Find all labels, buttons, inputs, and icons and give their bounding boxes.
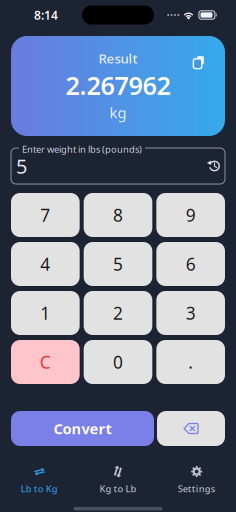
- button[interactable]: .: [156, 340, 225, 384]
- staticText: 8: [113, 203, 123, 226]
- staticText: 6: [186, 252, 196, 275]
- staticText: kg: [109, 103, 126, 122]
- button[interactable]: History: [208, 159, 221, 172]
- button[interactable]: 5: [84, 242, 152, 286]
- button[interactable]: 7: [11, 193, 80, 237]
- staticText: 0: [113, 350, 123, 373]
- staticText: 3: [186, 301, 196, 324]
- button[interactable]: Kg to Lb: [79, 461, 157, 499]
- staticText: C: [40, 350, 51, 373]
- staticText: 5: [16, 153, 27, 179]
- button[interactable]: C: [11, 340, 80, 384]
- staticText: 7: [40, 203, 50, 226]
- staticText: 9: [186, 203, 196, 226]
- button[interactable]: Convert: [11, 411, 154, 446]
- button[interactable]: 1: [11, 291, 80, 335]
- staticText: 8:14: [34, 7, 58, 23]
- button[interactable]: 2: [84, 291, 152, 335]
- staticText: Convert: [53, 419, 111, 438]
- button[interactable]: 4: [11, 242, 80, 286]
- button[interactable]: 6: [156, 242, 225, 286]
- staticText: Settings: [178, 483, 216, 495]
- button[interactable]: 9: [156, 193, 225, 237]
- button[interactable]: Lb to Kg: [0, 461, 79, 499]
- staticText: 4: [40, 252, 50, 275]
- staticText: 2.267962: [65, 68, 170, 102]
- staticText: 1: [40, 301, 50, 324]
- button[interactable]: Settings: [157, 461, 236, 499]
- button[interactable]: Delete: [157, 411, 225, 446]
- staticText: Enter weight in lbs (pounds): [22, 143, 142, 155]
- staticText: 5: [113, 252, 123, 275]
- staticText: Kg to Lb: [99, 483, 136, 495]
- staticText: .: [188, 350, 193, 373]
- button[interactable]: Copy result: [193, 36, 225, 69]
- staticText: Result: [98, 50, 137, 67]
- button[interactable]: 3: [156, 291, 225, 335]
- staticText: 2: [113, 301, 123, 324]
- staticText: Lb to Kg: [21, 483, 58, 495]
- button[interactable]: 0: [84, 340, 152, 384]
- button[interactable]: 8: [84, 193, 152, 237]
